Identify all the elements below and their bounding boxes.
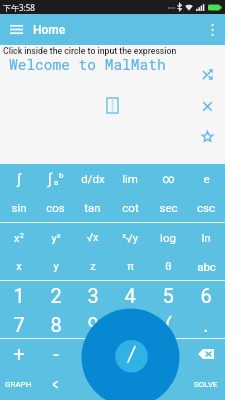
staticText: cot — [122, 201, 139, 214]
button[interactable]: GRAPH — [0, 368, 37, 400]
staticText: lim — [122, 172, 138, 185]
staticText: ( — [165, 313, 172, 336]
button[interactable]: × — [74, 339, 111, 368]
other: Operator wheel — [0, 0, 225, 400]
staticText: + — [13, 342, 25, 365]
button[interactable]: 7 — [0, 310, 37, 338]
staticText: x — [16, 260, 22, 273]
button[interactable]: 6 — [187, 281, 225, 310]
button[interactable]: - — [37, 339, 74, 368]
staticText: a — [54, 178, 59, 187]
button[interactable]: Shuffle — [196, 63, 218, 85]
button[interactable]: 2 — [37, 281, 74, 310]
button[interactable]: x√y — [111, 223, 149, 252]
staticText: Home — [33, 23, 66, 37]
staticText: 2 — [50, 284, 62, 307]
button[interactable]: lim — [111, 164, 149, 193]
button[interactable]: cos — [37, 193, 74, 222]
button[interactable]: tan — [74, 193, 111, 222]
staticText: ln — [201, 231, 211, 244]
button[interactable]: 9 — [74, 310, 111, 338]
staticText: 8 — [50, 313, 62, 336]
staticText: √x — [86, 231, 99, 244]
button[interactable]: Next — [149, 368, 187, 400]
button[interactable]: sin — [0, 193, 37, 222]
button[interactable]: Add to favourites — [196, 125, 218, 147]
button[interactable]: SOLVE — [187, 368, 225, 400]
button[interactable]: csc — [187, 193, 225, 222]
staticText: x√y — [122, 231, 138, 244]
button[interactable]: ( — [149, 310, 187, 338]
button[interactable]: π — [111, 252, 149, 280]
button[interactable]: d/dx — [74, 164, 111, 193]
staticText: abc — [197, 260, 216, 273]
button[interactable]: θ — [149, 252, 187, 280]
staticText: Welcome to MalMath — [9, 55, 166, 74]
staticText: 3 — [87, 284, 99, 307]
button[interactable]: + — [0, 339, 37, 368]
button[interactable]: ∫ — [37, 164, 74, 193]
staticText: 4 — [124, 284, 136, 307]
button[interactable]: x2 — [0, 223, 37, 252]
staticText: e — [203, 172, 210, 185]
button[interactable]: More options — [199, 14, 225, 45]
button[interactable]: log — [149, 223, 187, 252]
staticText: z — [90, 260, 96, 273]
button[interactable]: ∫ — [0, 164, 37, 193]
button[interactable]: Open navigation drawer — [0, 14, 32, 45]
staticText: SOLVE — [194, 380, 218, 389]
staticText: b — [59, 171, 64, 180]
button[interactable]: ∞ — [149, 164, 187, 193]
button[interactable]: abc — [187, 252, 225, 280]
button[interactable]: sec — [149, 193, 187, 222]
button[interactable]: Clear — [196, 95, 218, 117]
button[interactable]: Backspace — [187, 339, 225, 368]
staticText: - — [53, 342, 59, 365]
staticText: y — [53, 260, 59, 273]
staticText: ∞ — [162, 172, 175, 186]
staticText: sec — [159, 201, 178, 214]
staticText: csc — [197, 201, 215, 214]
button[interactable]: 0 — [111, 310, 149, 338]
staticText: cos — [46, 201, 65, 214]
button[interactable]: yx — [37, 223, 74, 252]
button[interactable]: . — [187, 310, 225, 338]
staticText: sin — [11, 201, 27, 214]
staticText: log — [160, 231, 176, 244]
staticText: ∫ — [17, 171, 21, 187]
staticText: 7 — [13, 313, 25, 336]
staticText: yx — [51, 231, 61, 244]
staticText: tan — [84, 201, 101, 214]
button[interactable]: √x — [74, 223, 111, 252]
staticText: x2 — [14, 231, 24, 244]
button[interactable]: 1 — [0, 281, 37, 310]
button[interactable]: 8 — [37, 310, 74, 338]
button[interactable]: 3 — [74, 281, 111, 310]
button[interactable]: x — [0, 252, 37, 280]
button[interactable]: 5 — [149, 281, 187, 310]
staticText: . — [203, 313, 209, 336]
staticText: π — [127, 260, 134, 273]
staticText: 6 — [200, 284, 212, 307]
staticText: 9 — [87, 313, 99, 336]
staticText: 下午3:58 — [3, 2, 35, 13]
button[interactable]: z — [74, 252, 111, 280]
button[interactable]: ln — [187, 223, 225, 252]
staticText: GRAPH — [5, 380, 32, 389]
button[interactable]: Previous — [37, 368, 74, 400]
staticText: 1 — [13, 284, 25, 307]
staticText: Click inside the circle to input the exp… — [3, 46, 177, 56]
button[interactable]: 4 — [111, 281, 149, 310]
button[interactable]: = — [149, 339, 187, 368]
button[interactable]: cot — [111, 193, 149, 222]
button[interactable]: ) — [111, 339, 149, 368]
staticText: ∫ — [48, 170, 52, 188]
button[interactable]: y — [37, 252, 74, 280]
staticText: d/dx — [81, 172, 105, 185]
staticText: 5 — [162, 284, 174, 307]
button[interactable]: e — [187, 164, 225, 193]
staticText: θ — [165, 260, 172, 273]
